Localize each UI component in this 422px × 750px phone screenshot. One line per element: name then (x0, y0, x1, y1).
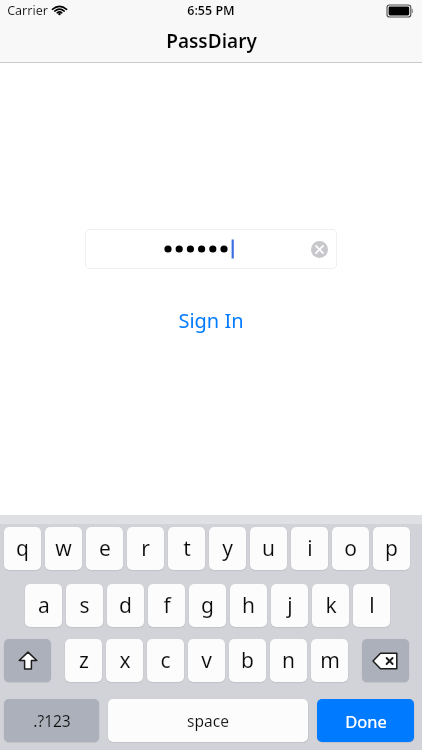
button[interactable]: u (250, 527, 287, 570)
button[interactable]: o (332, 527, 369, 570)
button[interactable]: Backspace (362, 639, 409, 682)
staticText: c (160, 646, 171, 675)
staticText: h (242, 591, 255, 620)
staticText: z (79, 646, 89, 675)
button[interactable]: k (312, 584, 349, 627)
staticText: k (325, 591, 337, 620)
staticText: v (201, 646, 212, 675)
staticText: f (163, 591, 171, 620)
button[interactable]: j (271, 584, 308, 627)
button[interactable]: b (229, 639, 266, 682)
staticText: i (307, 534, 313, 563)
staticText: p (385, 534, 398, 563)
staticText: s (79, 591, 90, 620)
button[interactable]: d (107, 584, 144, 627)
staticText: space (187, 710, 229, 731)
staticText: PassDiary (166, 28, 257, 54)
button[interactable]: x (106, 639, 143, 682)
button[interactable]: space (108, 699, 308, 742)
button[interactable]: y (209, 527, 246, 570)
button[interactable]: h (230, 584, 267, 627)
staticText: e (99, 534, 111, 563)
button[interactable]: n (270, 639, 307, 682)
staticText: Done (345, 710, 387, 732)
staticText: d (119, 591, 132, 620)
button[interactable]: Done (317, 699, 414, 742)
button[interactable]: Shift (4, 639, 51, 682)
staticText: w (55, 534, 72, 563)
button[interactable]: s (66, 584, 103, 627)
button[interactable]: Clear text (85, 229, 337, 269)
button[interactable]: z (65, 639, 102, 682)
button[interactable]: Clear text (308, 238, 330, 260)
button[interactable]: t (168, 527, 205, 570)
staticText: l (369, 591, 375, 620)
button[interactable]: a (25, 584, 62, 627)
button[interactable]: c (147, 639, 184, 682)
button[interactable]: g (189, 584, 226, 627)
staticText: Sign In (178, 307, 244, 334)
button[interactable]: m (311, 639, 348, 682)
button[interactable]: .?123 (4, 699, 99, 742)
staticText: n (282, 646, 295, 675)
staticText: 6:55 PM (187, 2, 235, 19)
staticText: a (38, 591, 50, 620)
staticText: j (287, 591, 293, 620)
button[interactable]: v (188, 639, 225, 682)
staticText: q (16, 534, 29, 563)
staticText: g (201, 591, 214, 620)
button[interactable]: Sign In (150, 304, 272, 336)
staticText: .?123 (33, 710, 71, 731)
button[interactable]: i (291, 527, 328, 570)
staticText: r (141, 534, 150, 563)
button[interactable]: q (4, 527, 41, 570)
staticText: o (344, 534, 357, 563)
button[interactable]: e (86, 527, 123, 570)
staticText: t (183, 534, 191, 563)
staticText: u (262, 534, 275, 563)
button[interactable]: r (127, 527, 164, 570)
staticText: Carrier (7, 2, 48, 19)
button[interactable]: f (148, 584, 185, 627)
button[interactable]: p (373, 527, 410, 570)
button[interactable]: l (353, 584, 390, 627)
button[interactable]: w (45, 527, 82, 570)
staticText: x (119, 646, 131, 675)
staticText: m (320, 646, 340, 675)
staticText: b (241, 646, 254, 675)
staticText: y (222, 534, 233, 563)
